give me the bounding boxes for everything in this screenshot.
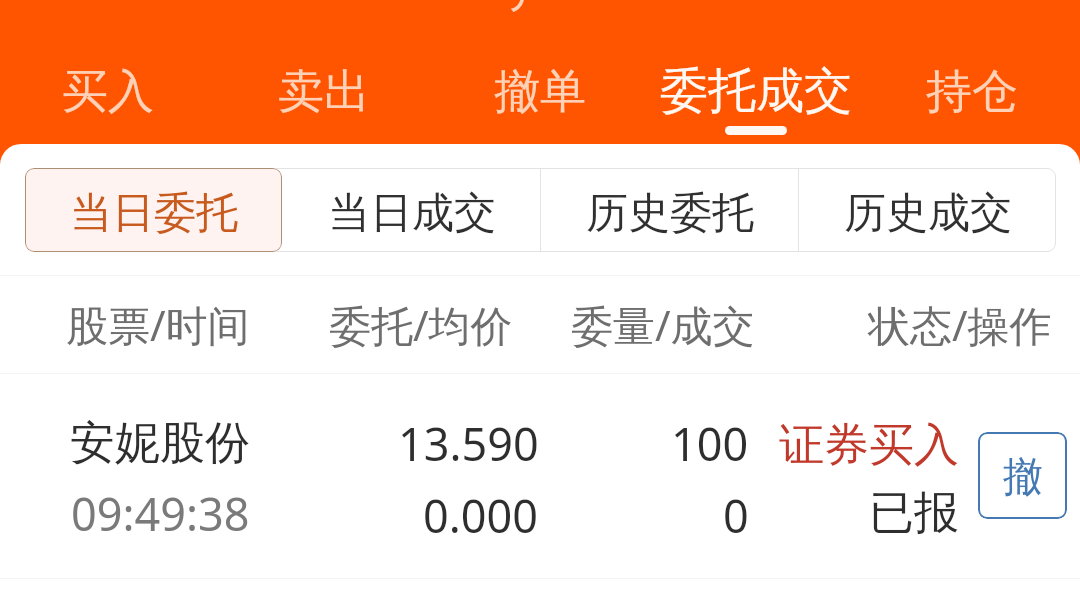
- staticText: 13.590: [398, 413, 539, 474]
- staticText: 撤: [1003, 451, 1043, 501]
- staticText: 100: [671, 413, 749, 474]
- button[interactable]: 撤单: [978, 432, 1067, 519]
- staticText: 股票/时间: [66, 296, 250, 353]
- staticText: 证券买入: [779, 417, 959, 474]
- staticText: 委量/成交: [571, 296, 755, 353]
- staticText: 委托成交: [660, 61, 852, 121]
- button[interactable]: 当日成交: [283, 168, 540, 252]
- staticText: 状态/操作: [868, 296, 1052, 353]
- staticText: 户: [509, 0, 555, 20]
- staticText: 0.000: [423, 485, 539, 546]
- button[interactable]: 卖出: [216, 0, 432, 144]
- button[interactable]: 安妮股份: [0, 374, 1080, 578]
- staticText: 0: [723, 485, 749, 546]
- staticText: 买入: [62, 63, 154, 121]
- staticText: 卖出: [278, 63, 370, 121]
- button[interactable]: 委托成交: [648, 0, 864, 144]
- button[interactable]: 历史委托: [541, 168, 798, 252]
- staticText: 撤单: [494, 63, 586, 121]
- staticText: 当日委托: [70, 187, 238, 240]
- staticText: 安妮股份: [70, 415, 250, 472]
- staticText: 当日成交: [328, 187, 496, 240]
- button[interactable]: 历史成交: [799, 168, 1056, 252]
- button[interactable]: 买入: [0, 0, 216, 144]
- button[interactable]: 持仓: [864, 0, 1080, 144]
- button[interactable]: 撤单: [432, 0, 648, 144]
- staticText: 历史委托: [586, 187, 754, 240]
- button[interactable]: [25, 168, 282, 252]
- staticText: 09:49:38: [71, 483, 250, 544]
- staticText: 已报: [869, 485, 959, 542]
- staticText: 委托/均价: [329, 296, 513, 353]
- button[interactable]: 当日委托: [25, 168, 282, 252]
- staticText: 历史成交: [844, 187, 1012, 240]
- staticText: 持仓: [926, 63, 1018, 121]
